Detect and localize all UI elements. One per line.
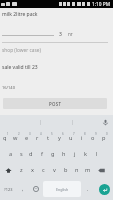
staticText: ?123 xyxy=(4,187,13,192)
staticText: POST xyxy=(49,101,62,107)
staticText: o xyxy=(91,134,95,142)
staticText: English xyxy=(56,187,69,192)
staticText: y xyxy=(58,134,61,142)
staticText: l xyxy=(96,150,98,158)
button[interactable]: b xyxy=(60,162,71,178)
staticText: 3 xyxy=(59,31,62,38)
staticText: g xyxy=(51,150,55,158)
button[interactable]: 2 xyxy=(10,130,21,146)
button[interactable]: l xyxy=(91,146,102,162)
staticText: shop (lower case) xyxy=(2,47,41,54)
button[interactable]: n xyxy=(71,162,82,178)
staticText: s xyxy=(20,150,23,158)
staticText: i xyxy=(81,134,83,142)
button[interactable]: h xyxy=(58,146,69,162)
staticText: p xyxy=(102,134,106,142)
staticText: m xyxy=(85,166,91,174)
staticText: 16/140 xyxy=(2,85,15,90)
staticText: e xyxy=(25,134,29,142)
button[interactable]: 0 xyxy=(98,130,109,146)
button[interactable]: a xyxy=(6,146,16,162)
staticText: r xyxy=(36,134,39,142)
button[interactable]: f xyxy=(36,146,47,162)
button[interactable]: Voice input xyxy=(101,118,109,126)
staticText: f xyxy=(41,150,43,158)
staticText: u xyxy=(69,134,73,142)
staticText: q xyxy=(3,134,7,142)
staticText: 2 xyxy=(18,132,20,136)
staticText: a xyxy=(9,150,13,158)
button[interactable]: Enter xyxy=(93,178,113,200)
staticText: , xyxy=(22,185,24,192)
button[interactable]: English xyxy=(43,181,81,197)
staticText: 5 xyxy=(51,132,53,136)
staticText: 6 xyxy=(62,132,64,136)
button[interactable]: c xyxy=(38,162,49,178)
staticText: 1:10 PM xyxy=(92,1,111,8)
button[interactable]: Backspace xyxy=(93,162,109,178)
button[interactable]: s xyxy=(16,146,26,162)
staticText: d xyxy=(29,150,33,158)
button[interactable]: d xyxy=(26,146,36,162)
staticText: . xyxy=(87,185,89,192)
button[interactable]: j xyxy=(69,146,80,162)
button[interactable]: 9 xyxy=(87,130,98,146)
button[interactable]: 6 xyxy=(54,130,65,146)
staticText: k xyxy=(84,150,87,158)
staticText: n xyxy=(75,166,79,174)
staticText: 8 xyxy=(84,132,86,136)
button[interactable]: 8 xyxy=(76,130,87,146)
button[interactable]: 4 xyxy=(32,130,43,146)
button[interactable]: g xyxy=(47,146,58,162)
staticText: nr xyxy=(68,31,73,37)
staticText: 4 xyxy=(40,132,42,136)
button[interactable]: 7 xyxy=(65,130,76,146)
button[interactable]: m xyxy=(82,162,93,178)
staticText: 9 xyxy=(95,132,97,136)
button[interactable]: Shift xyxy=(0,162,16,178)
button[interactable]: , xyxy=(16,178,29,200)
staticText: c xyxy=(42,166,45,174)
button[interactable]: 5 xyxy=(43,130,54,146)
staticText: v xyxy=(53,166,56,174)
button[interactable]: ?123 xyxy=(0,178,16,200)
staticText: 0 xyxy=(106,132,108,136)
button[interactable]: z xyxy=(16,162,27,178)
button[interactable]: 3 xyxy=(21,130,32,146)
button[interactable]: POST xyxy=(3,98,107,109)
staticText: 1 xyxy=(7,132,9,136)
staticText: milk 2litre pack xyxy=(2,11,38,18)
button[interactable]: Emoji xyxy=(29,178,42,200)
staticText: 3 xyxy=(29,132,31,136)
staticText: sale valid till 23 xyxy=(2,64,38,71)
button[interactable]: x xyxy=(27,162,38,178)
staticText: t xyxy=(47,134,50,142)
staticText: h xyxy=(62,150,66,158)
staticText: b xyxy=(64,166,68,174)
button[interactable]: k xyxy=(80,146,91,162)
button[interactable]: 1 xyxy=(0,130,10,146)
staticText: x xyxy=(31,166,34,174)
staticText: w xyxy=(13,134,18,142)
staticText: 7 xyxy=(73,132,75,136)
staticText: j xyxy=(74,150,76,158)
staticText: z xyxy=(20,166,23,174)
button[interactable]: v xyxy=(49,162,60,178)
